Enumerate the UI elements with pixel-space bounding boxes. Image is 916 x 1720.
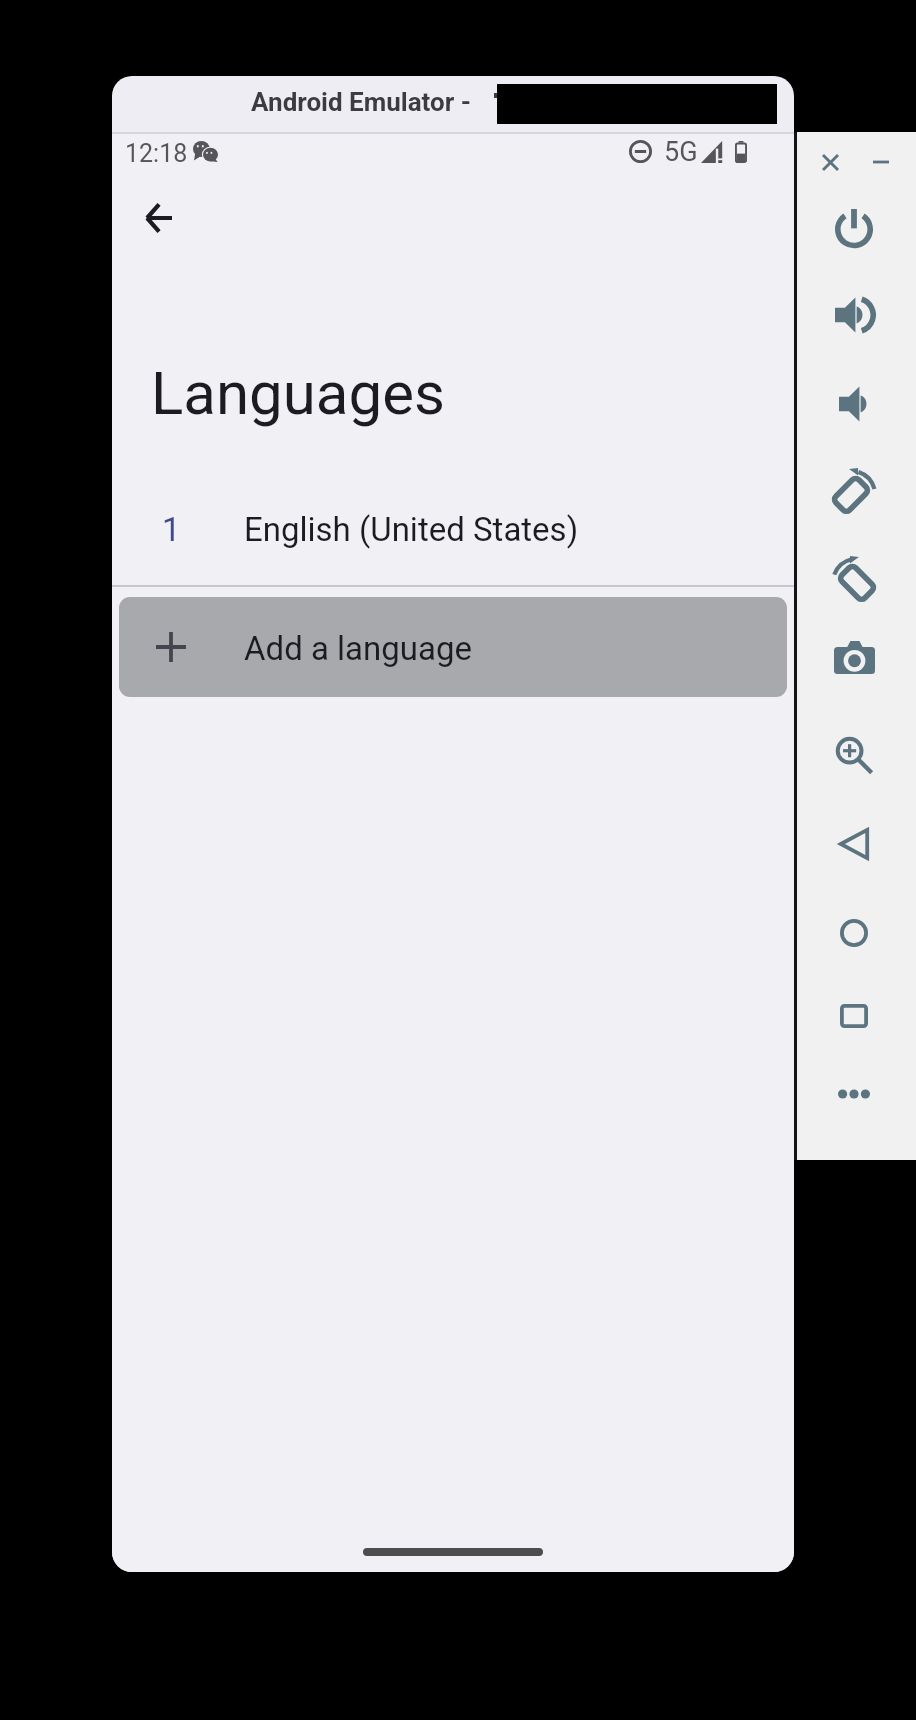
staticText: Languages [151,358,445,428]
staticText: Android Emulator - [251,87,478,117]
button[interactable]: 1 [112,495,794,583]
button[interactable]: More options [822,1062,886,1126]
staticText: Add a language [244,629,472,668]
staticText: 12:18 [125,139,188,168]
button[interactable]: Rotate left [822,461,886,525]
button[interactable]: Add a language [119,597,787,697]
staticText: 5G [664,136,698,168]
button[interactable]: Volume up [822,283,886,347]
button[interactable]: Home [822,901,886,965]
button[interactable]: Rotate right [822,549,886,613]
button[interactable]: Back [822,812,886,876]
button[interactable]: Volume down [822,372,886,436]
button[interactable]: Overview [822,984,886,1048]
button[interactable]: Close emulator [808,140,852,184]
button[interactable]: Take screenshot [822,625,886,689]
staticText: English (United States) [244,510,579,549]
button[interactable]: Zoom [822,724,886,788]
button[interactable]: Power [822,196,886,260]
staticText: 1 [162,510,181,549]
button[interactable]: Back [126,186,190,250]
button[interactable]: Minimize emulator [859,140,903,184]
